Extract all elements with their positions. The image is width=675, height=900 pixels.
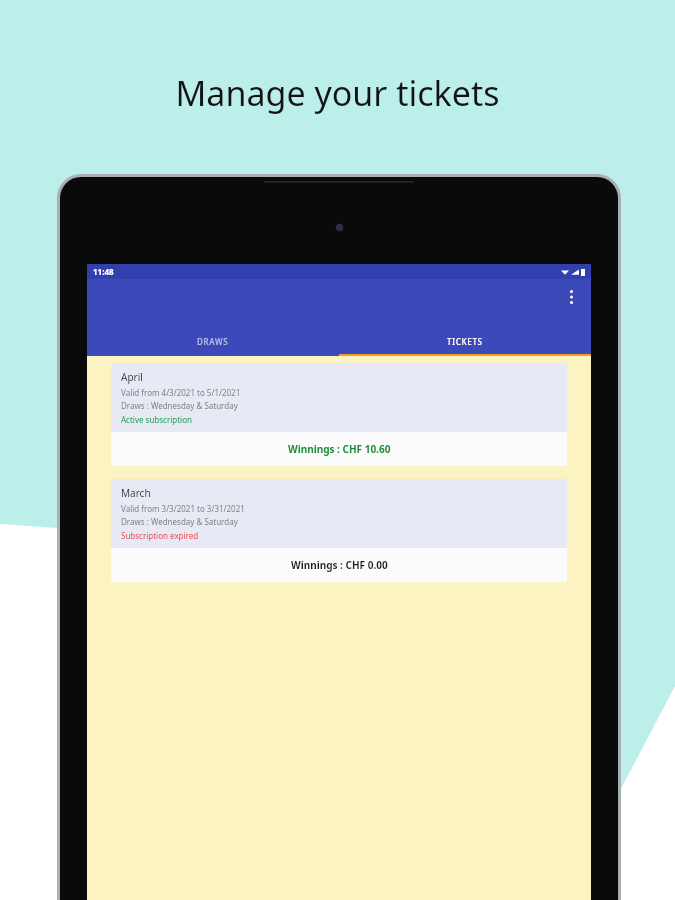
button[interactable]: DRAWS <box>87 326 339 356</box>
staticText: Active subscription <box>121 414 192 425</box>
button[interactable]: March <box>111 479 567 582</box>
staticText: Draws : Wednesday & Saturday <box>121 516 238 527</box>
staticText: TICKETS <box>447 336 483 347</box>
staticText: DRAWS <box>197 336 229 347</box>
staticText: April <box>121 370 143 384</box>
staticText: Draws : Wednesday & Saturday <box>121 400 238 411</box>
staticText: Valid from 3/3/2021 to 3/31/2021 <box>121 503 245 514</box>
staticText: 11:48 <box>93 266 114 277</box>
staticText: Valid from 4/3/2021 to 5/1/2021 <box>121 387 241 398</box>
staticText: Winnings : CHF 10.60 <box>288 442 391 456</box>
button[interactable]: April <box>111 363 567 466</box>
button[interactable]: TICKETS <box>339 326 591 356</box>
staticText: Subscription expired <box>121 530 199 541</box>
staticText: Manage your tickets <box>0 70 675 116</box>
staticText: Winnings : CHF 0.00 <box>291 558 388 572</box>
staticText: March <box>121 486 151 500</box>
button[interactable]: More options <box>559 285 583 309</box>
